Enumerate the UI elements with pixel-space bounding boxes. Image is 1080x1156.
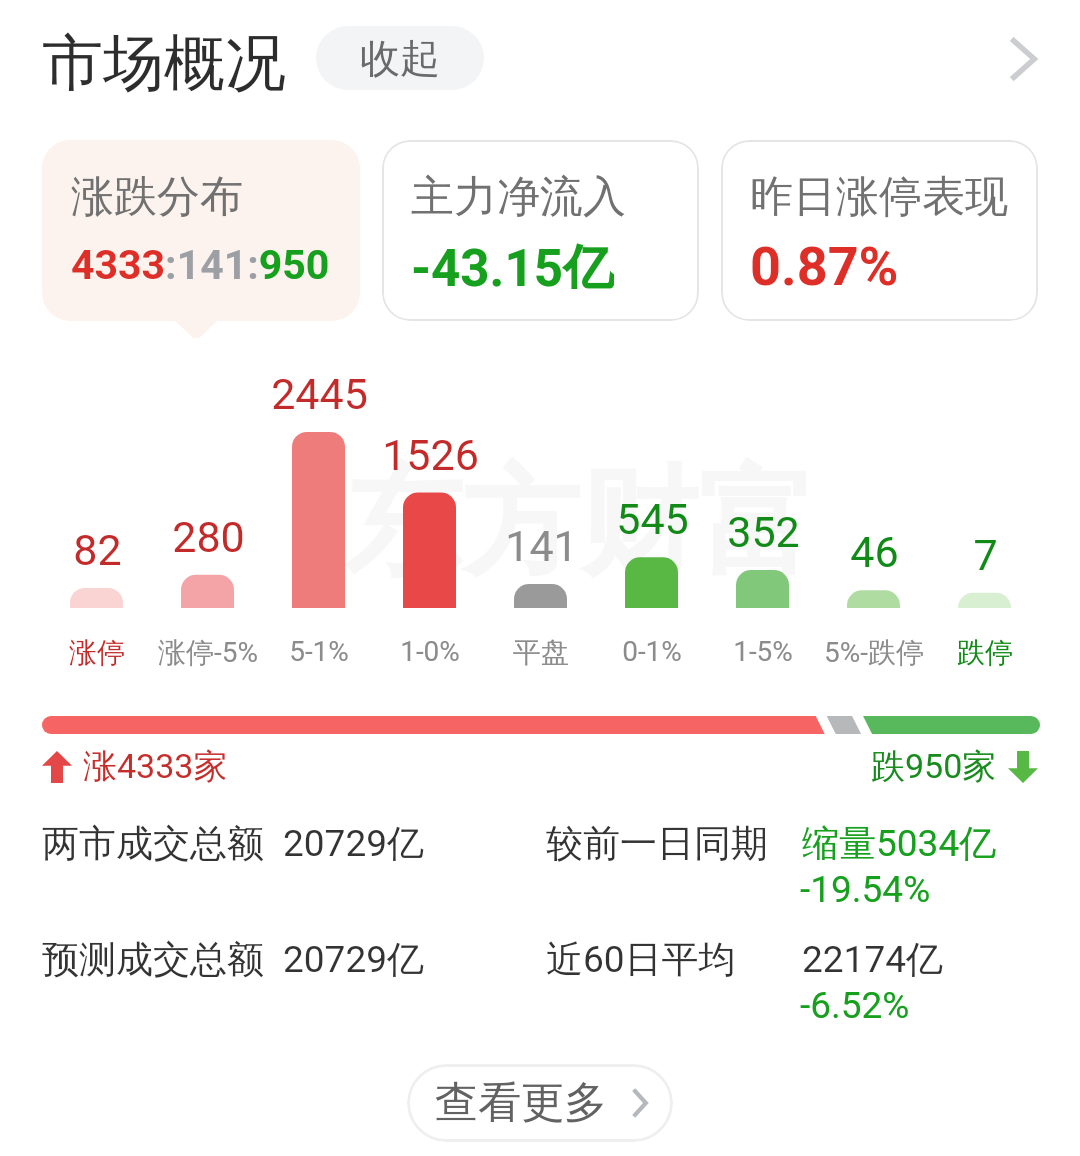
button[interactable]: 查看更多 <box>407 1064 673 1142</box>
staticText: 平盘 <box>513 635 569 670</box>
staticText: 较前一日同期 <box>546 820 768 867</box>
staticText: 5-1% <box>289 635 349 668</box>
staticText: 查看更多 <box>435 1076 607 1130</box>
staticText: 22174亿 <box>802 936 943 983</box>
staticText: 市场概况 <box>42 25 286 102</box>
staticText: 预测成交总额 <box>42 936 264 983</box>
staticText: 主力净流入 <box>411 170 626 224</box>
staticText: 141 <box>505 521 578 571</box>
button[interactable]: 收起 <box>316 26 484 90</box>
staticText: -6.52% <box>800 984 910 1027</box>
staticText: 46 <box>850 527 899 577</box>
staticText: 0.87% <box>750 235 899 287</box>
staticText: 两市成交总额 <box>42 820 264 867</box>
button[interactable]: Expand market overview <box>988 23 1060 95</box>
staticText: 近60日平均 <box>546 936 736 983</box>
staticText: 跌停 <box>957 635 1013 670</box>
staticText: 收起 <box>360 33 440 83</box>
staticText: 涨停 <box>69 635 125 670</box>
staticText: 涨跌分布 <box>71 170 243 224</box>
staticText: 涨4333家 <box>83 745 228 788</box>
staticText: 545 <box>616 494 689 544</box>
staticText: 0-1% <box>622 635 682 668</box>
staticText: 东方财富 <box>344 449 816 598</box>
button[interactable]: 昨日涨停表现 <box>721 140 1038 321</box>
staticText: 跌950家 <box>871 745 997 788</box>
staticText: 7 <box>973 530 998 580</box>
staticText: 20729亿 <box>283 936 424 983</box>
staticText: -43.15亿 <box>411 237 614 289</box>
staticText: 280 <box>172 512 245 562</box>
staticText: 20729亿 <box>283 820 424 867</box>
staticText: 昨日涨停表现 <box>750 170 1008 224</box>
staticText: 1526 <box>382 430 479 480</box>
staticText: 1-0% <box>400 635 460 668</box>
staticText: 1-5% <box>733 635 793 668</box>
staticText: 2445 <box>271 369 368 419</box>
staticText: 4333:141:950 <box>71 241 330 289</box>
staticText: 涨停-5% <box>158 635 258 670</box>
staticText: 5%-跌停 <box>824 635 924 670</box>
staticText: 352 <box>727 507 800 557</box>
staticText: -19.54% <box>800 868 931 911</box>
button[interactable]: 涨跌分布 <box>42 140 360 321</box>
staticText: 82 <box>73 525 122 575</box>
staticText: 缩量5034亿 <box>802 820 997 867</box>
button[interactable]: 主力净流入 <box>382 140 699 321</box>
